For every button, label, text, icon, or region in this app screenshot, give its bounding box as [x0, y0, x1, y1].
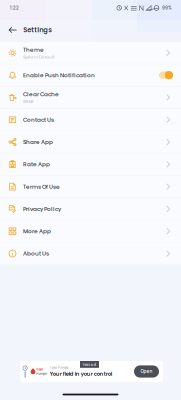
button[interactable]: Back: [0, 21, 23, 39]
staticText: Rate App: [23, 160, 50, 168]
staticText: Taro Pumps: [50, 365, 69, 370]
button[interactable]: Privacy Policy: [0, 198, 181, 220]
staticText: Contact Us: [23, 116, 54, 124]
staticText: Enable Push Notification: [23, 71, 95, 79]
staticText: 213 kB: [23, 99, 34, 105]
staticText: System Default: [23, 54, 55, 60]
staticText: Pumps: [36, 371, 47, 376]
staticText: 1:22: [10, 5, 19, 11]
staticText: Privacy Policy: [23, 205, 61, 213]
button[interactable]: About Us: [0, 243, 181, 264]
staticText: Open: [140, 368, 152, 375]
button[interactable]: Enable Push Notification: [0, 64, 181, 86]
button[interactable]: Rate App: [0, 153, 181, 175]
button[interactable]: Terms Of Use: [0, 176, 181, 197]
button[interactable]: Open: [134, 365, 159, 378]
staticText: Clear Cache: [23, 90, 59, 98]
staticText: 99%: [162, 5, 172, 11]
button[interactable]: Clear Cache: [0, 87, 181, 108]
staticText: Theme: [23, 46, 44, 54]
button[interactable]: More App: [0, 220, 181, 242]
staticText: Taro: [36, 367, 43, 371]
staticText: Terms Of Use: [23, 183, 60, 191]
staticText: Test Ad: [82, 362, 96, 367]
staticText: Settings: [23, 25, 52, 35]
button[interactable]: Share App: [0, 131, 181, 153]
staticText: Share App: [23, 138, 53, 146]
staticText: About Us: [23, 249, 49, 257]
button[interactable]: Contact Us: [0, 109, 181, 131]
staticText: Your field in your control: [50, 370, 112, 378]
button[interactable]: Theme: [0, 42, 181, 64]
staticText: More App: [23, 227, 51, 235]
